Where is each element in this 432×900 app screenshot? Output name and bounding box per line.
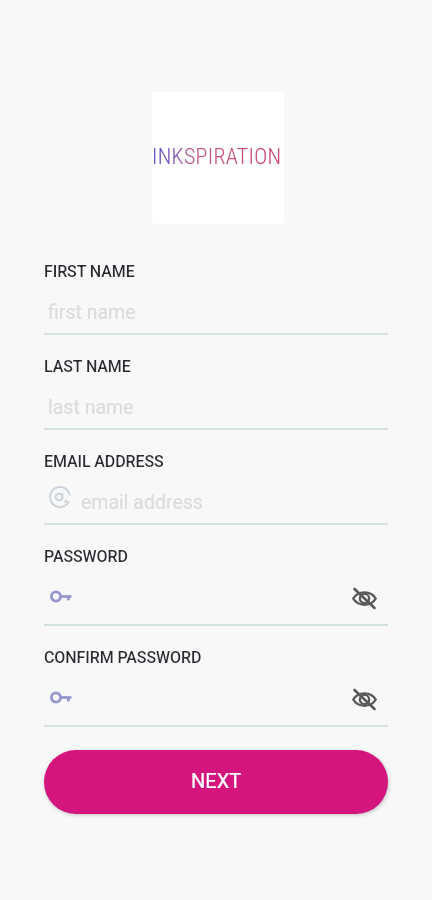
staticText: CONFIRM PASSWORD — [44, 648, 202, 667]
staticText: INKSPIRATION — [152, 144, 282, 170]
staticText: first name — [48, 301, 136, 324]
staticText: NEXT — [191, 769, 242, 792]
staticText: last name — [48, 396, 134, 419]
button[interactable]: email address — [44, 471, 388, 523]
staticText: email address — [81, 491, 203, 514]
button[interactable]: NEXT — [44, 750, 388, 814]
staticText: LAST NAME — [44, 357, 131, 376]
button[interactable]: first name — [44, 281, 388, 333]
button[interactable]: Toggle password visibility — [348, 578, 382, 612]
button[interactable]: Toggle password visibility — [44, 667, 388, 725]
button[interactable]: Toggle password visibility — [348, 679, 382, 713]
button[interactable]: Toggle password visibility — [44, 566, 388, 624]
button[interactable]: last name — [44, 376, 388, 428]
staticText: EMAIL ADDRESS — [44, 452, 164, 471]
staticText: FIRST NAME — [44, 262, 135, 281]
staticText: PASSWORD — [44, 547, 128, 566]
